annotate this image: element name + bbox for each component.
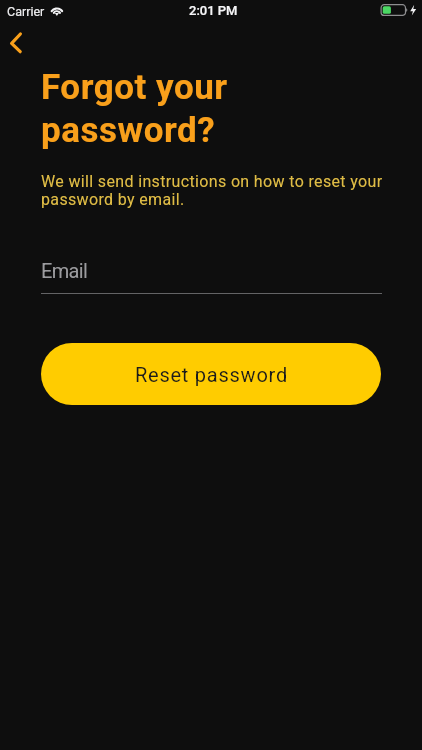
staticText: Reset password: [135, 363, 288, 386]
button[interactable]: Email: [41, 258, 382, 294]
button[interactable]: Reset password: [41, 343, 381, 405]
other: Battery charging: [380, 3, 420, 17]
staticText: Carrier: [7, 4, 45, 19]
other: Wi-Fi: [50, 3, 65, 16]
staticText: We will send instructions on how to rese…: [41, 172, 386, 209]
staticText: Email: [41, 259, 88, 282]
staticText: 2:01 PM: [189, 3, 238, 18]
staticText: Forgot your password?: [41, 67, 381, 151]
button[interactable]: Back: [0, 23, 40, 63]
